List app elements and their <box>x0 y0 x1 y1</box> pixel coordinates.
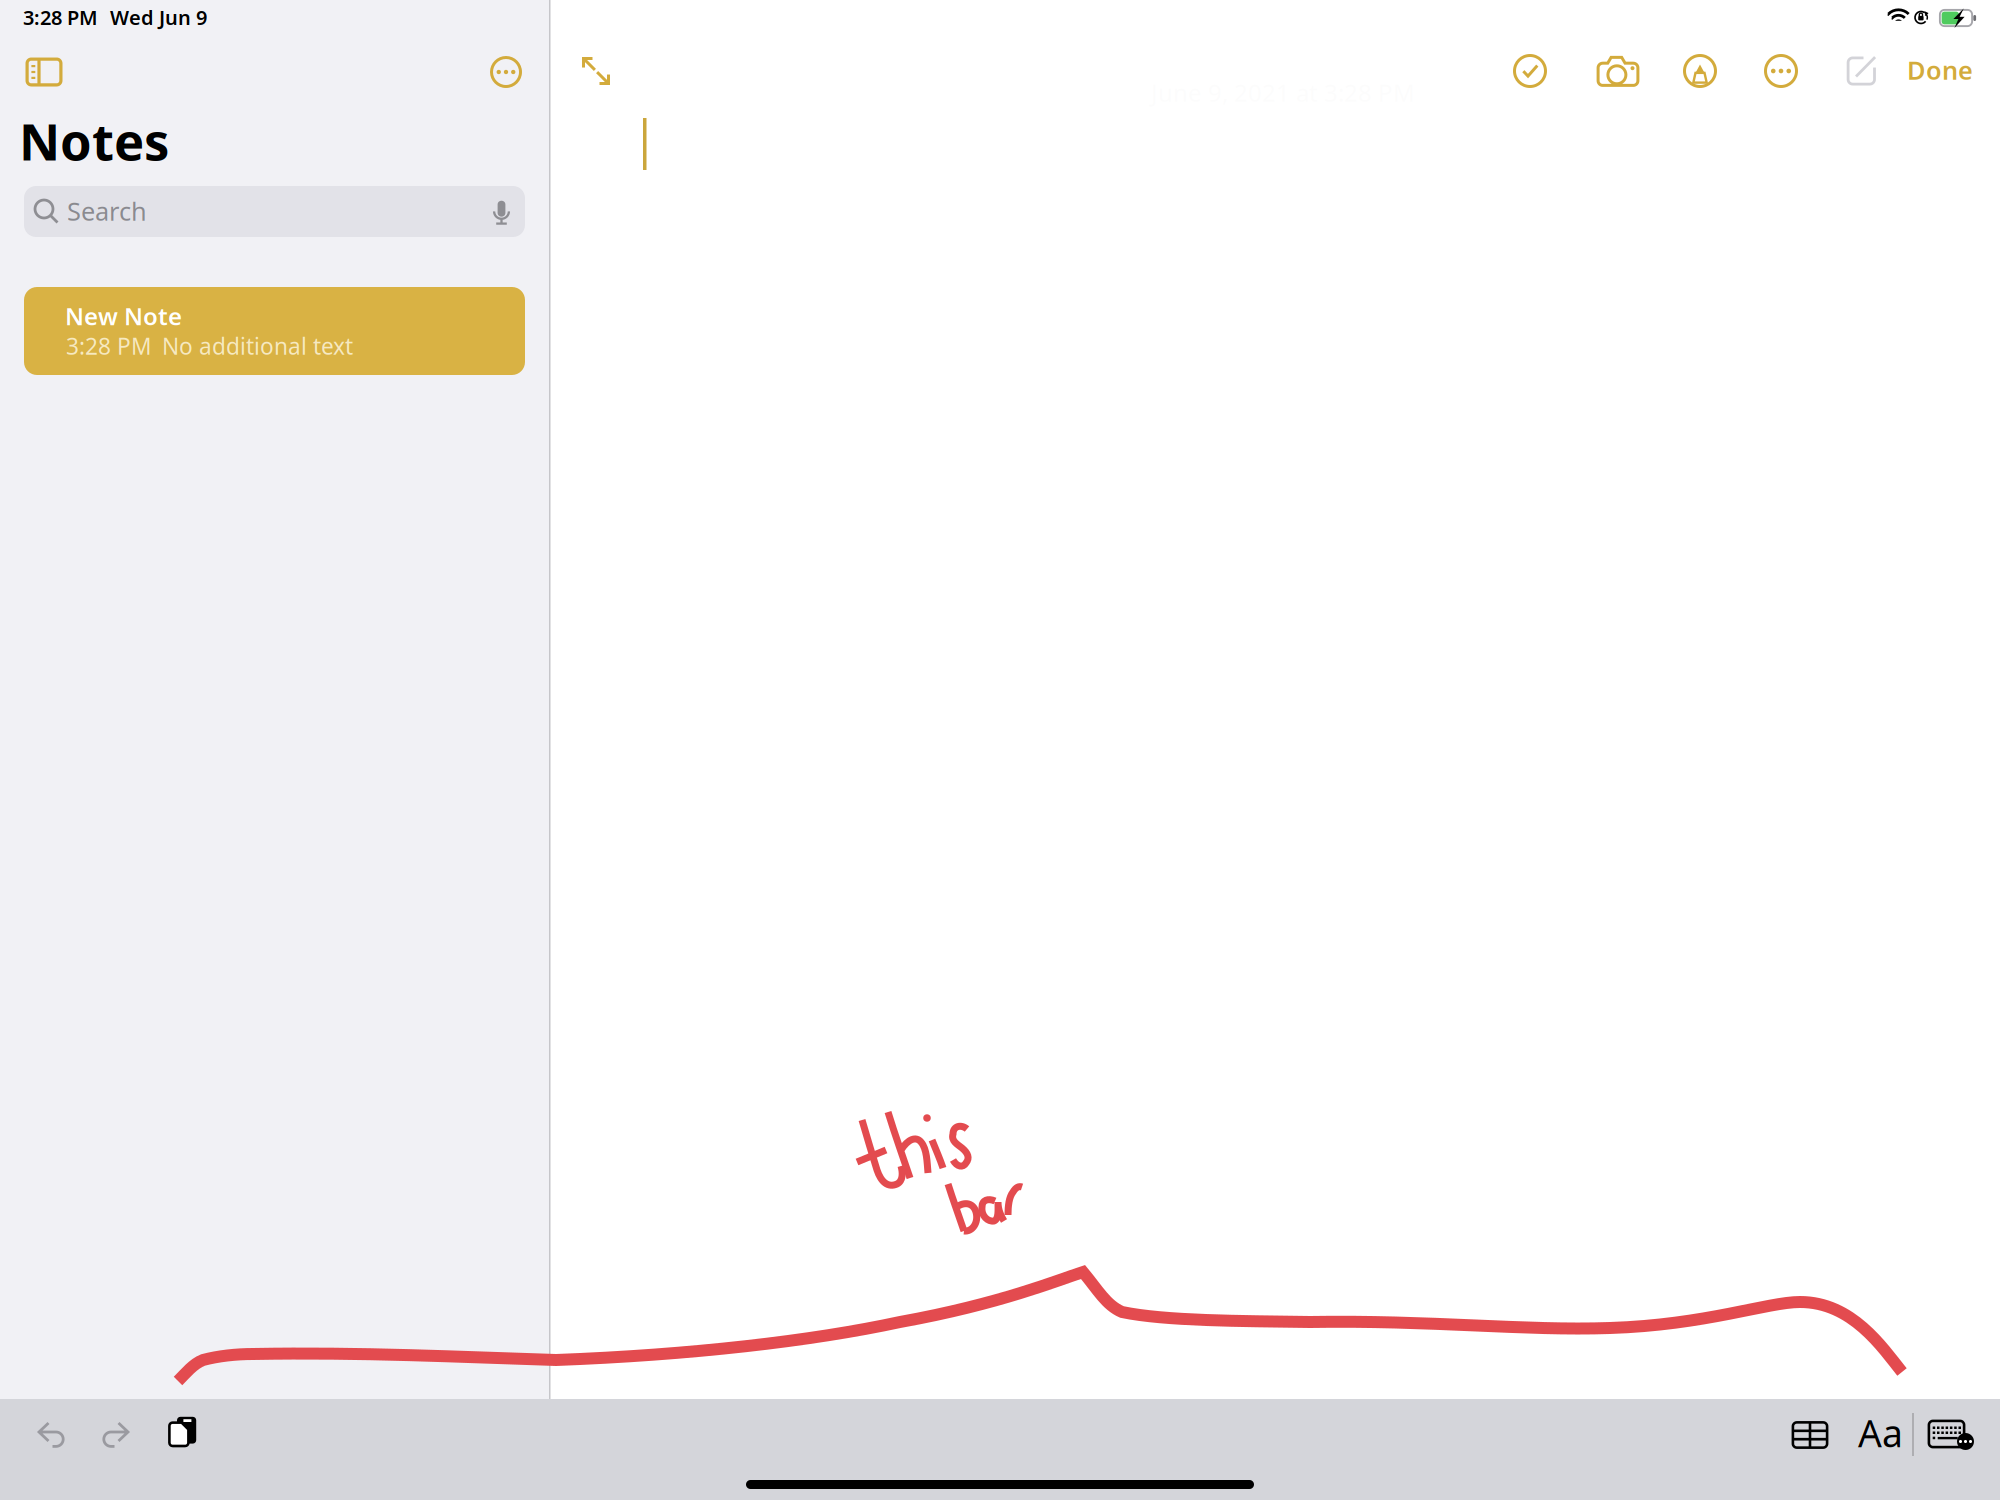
button[interactable]: More Options <box>1752 43 1810 99</box>
button[interactable]: Keyboard <box>1922 1406 1980 1462</box>
staticText: Done <box>1907 53 1973 87</box>
button[interactable]: Paste <box>155 1405 211 1461</box>
button[interactable]: More <box>477 44 535 100</box>
button[interactable]: Undo <box>24 1407 80 1463</box>
staticText: No additional text <box>162 331 353 361</box>
button[interactable]: Search <box>24 186 525 237</box>
staticText: Wed Jun 9 <box>110 4 207 30</box>
button[interactable]: Hide Sidebar <box>14 44 74 100</box>
button[interactable]: Insert Table <box>1781 1407 1839 1463</box>
staticText: New Note <box>65 300 182 332</box>
button[interactable]: Markup <box>1671 43 1729 99</box>
button[interactable]: New Note <box>1833 43 1891 99</box>
button[interactable]: Redo <box>87 1407 143 1463</box>
staticText: 3:28 PM <box>66 331 152 361</box>
button[interactable]: Camera <box>1587 43 1649 99</box>
button[interactable]: Expand Note <box>566 43 626 99</box>
button[interactable]: Done <box>1896 43 1994 99</box>
staticText: Notes <box>19 107 169 174</box>
staticText: Aa <box>1858 1408 1903 1458</box>
staticText: Search <box>67 194 147 228</box>
button[interactable]: Checklist <box>1501 43 1559 99</box>
staticText: 3:28 PM <box>23 4 98 30</box>
button[interactable]: New Note <box>24 287 525 375</box>
button[interactable]: Format Text <box>1847 1407 1905 1463</box>
